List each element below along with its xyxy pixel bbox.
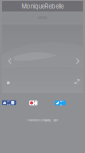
button[interactable]: Tweet — [55, 101, 66, 105]
button[interactable]: Login — [53, 119, 58, 122]
staticText: Powered by SmugMug — [27, 119, 50, 122]
button[interactable]: MoniqueRebelle — [2, 1, 83, 11]
button[interactable]: Pause slideshow — [6, 80, 11, 85]
button[interactable]: Like — [2, 100, 16, 105]
staticText: Save — [34, 96, 37, 110]
staticText: MENU — [38, 16, 47, 20]
button[interactable]: Full screen — [73, 78, 80, 85]
staticText: Like — [7, 99, 11, 107]
button[interactable]: Save — [29, 100, 37, 105]
button[interactable]: Previous photo — [6, 56, 13, 66]
staticText: Tweet — [60, 95, 64, 111]
staticText: Login — [53, 119, 58, 122]
staticText: MoniqueRebelle — [21, 3, 63, 10]
button[interactable]: Next photo — [74, 56, 82, 66]
